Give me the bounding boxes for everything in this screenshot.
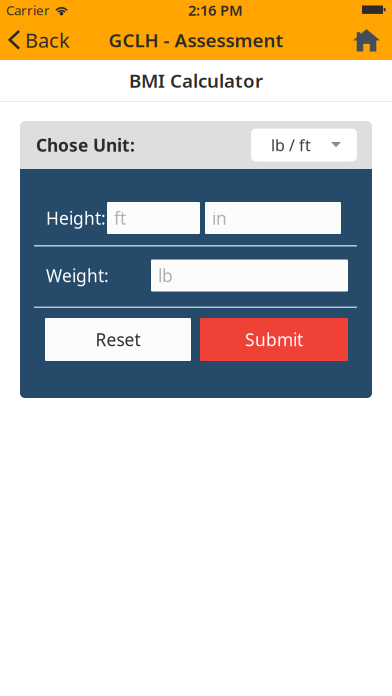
staticText: lb — [158, 264, 173, 287]
button[interactable]: Submit — [200, 318, 348, 361]
staticText: Height: — [46, 206, 106, 229]
staticText: 2:16 PM — [188, 0, 243, 20]
staticText: BMI Calculator — [129, 68, 263, 93]
button[interactable]: Reset — [45, 318, 191, 361]
staticText: Submit — [245, 328, 303, 351]
staticText: ft — [114, 206, 126, 229]
staticText: Chose Unit: — [36, 133, 135, 156]
staticText: GCLH - Assessment — [108, 28, 283, 52]
staticText: Weight: — [46, 264, 109, 287]
staticText: Carrier — [6, 1, 50, 19]
button[interactable]: Home — [343, 20, 392, 60]
staticText: Reset — [95, 328, 140, 351]
staticText: in — [212, 206, 227, 229]
button[interactable]: Back — [0, 20, 78, 60]
staticText: Back — [25, 27, 70, 53]
button[interactable]: lb / ft — [251, 128, 357, 161]
staticText: lb / ft — [271, 134, 311, 156]
